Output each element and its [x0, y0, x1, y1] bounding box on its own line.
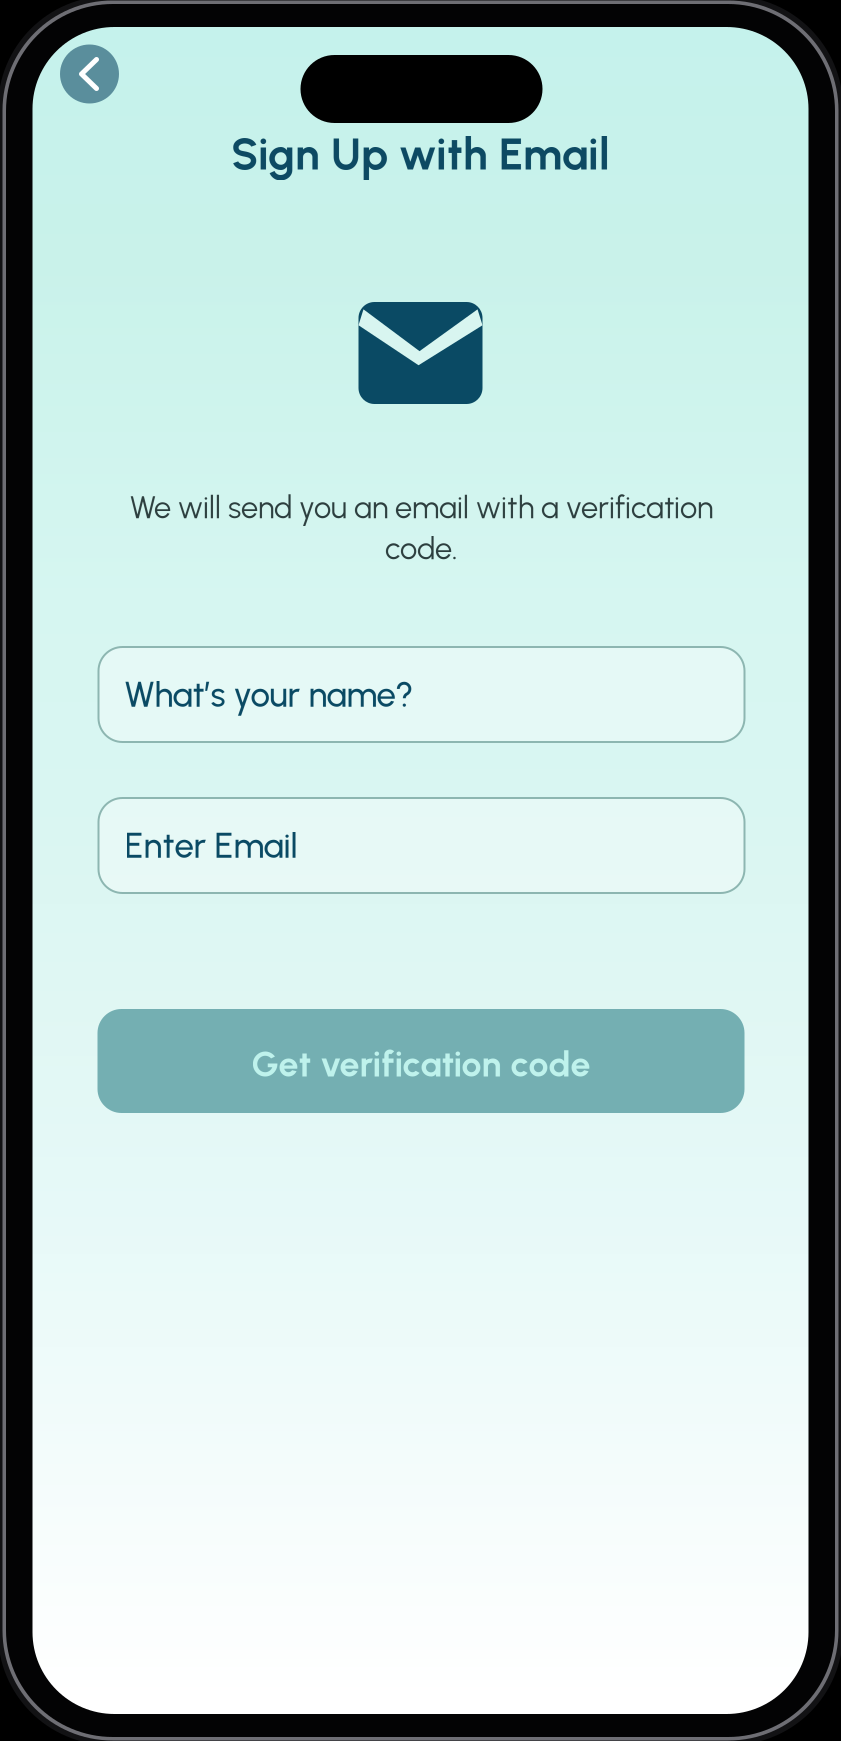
staticText: What’s your name? — [124, 674, 413, 715]
button[interactable]: Get verification code — [97, 1009, 744, 1113]
staticText: We will send you an email with a verific… — [130, 489, 713, 526]
staticText: Sign Up with Email — [231, 128, 610, 180]
staticText: code. — [385, 530, 458, 567]
button[interactable]: Enter Email — [98, 798, 744, 893]
staticText: Enter Email — [124, 825, 297, 866]
button[interactable]: Back — [60, 44, 119, 103]
button[interactable]: What’s your name? — [98, 647, 744, 742]
staticText: Get verification code — [251, 1043, 590, 1085]
